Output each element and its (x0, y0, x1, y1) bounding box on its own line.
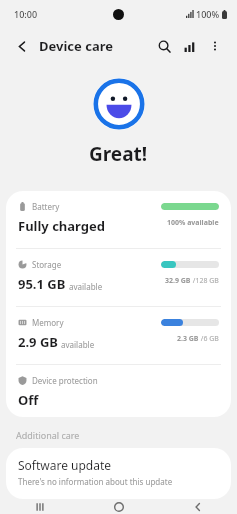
button[interactable]: Usage statistics (177, 33, 203, 59)
staticText: Device care (39, 37, 113, 55)
button[interactable]: Memory (6, 307, 231, 364)
button[interactable]: Battery (6, 191, 231, 248)
staticText: Storage (32, 259, 62, 270)
staticText: There's no information about this update (18, 476, 173, 487)
staticText: Additional care (16, 429, 80, 441)
staticText: /6 GB (199, 334, 219, 344)
staticText: 32.9 GB (165, 276, 191, 286)
staticText: Software update (18, 457, 112, 473)
button[interactable]: Back (10, 34, 34, 58)
staticText: Great! (89, 141, 148, 167)
button[interactable]: Storage (6, 249, 231, 306)
staticText: available (69, 281, 103, 292)
staticText: Device protection (32, 375, 98, 386)
staticText: 2.9 GB (18, 333, 58, 351)
staticText: 2.3 GB (177, 334, 199, 344)
button[interactable]: Recents (0, 499, 79, 514)
staticText: 100% available (167, 218, 219, 228)
staticText: Memory (32, 317, 64, 328)
staticText: Battery (32, 201, 60, 212)
button[interactable]: Search (151, 33, 177, 59)
button[interactable]: Software update (6, 448, 231, 499)
button[interactable]: Device protection (6, 365, 231, 417)
staticText: 100% (196, 8, 220, 20)
staticText: available (61, 339, 95, 350)
staticText: Off (18, 391, 39, 409)
button[interactable]: Home (79, 499, 158, 514)
button[interactable]: More options (203, 34, 227, 58)
staticText: Fully charged (18, 217, 105, 235)
staticText: 95.1 GB (18, 275, 66, 293)
staticText: 10:00 (14, 8, 38, 20)
button[interactable]: Back (158, 499, 237, 514)
staticText: /128 GB (191, 276, 219, 286)
